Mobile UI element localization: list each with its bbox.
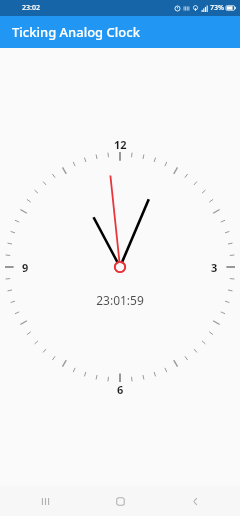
button[interactable]: Back — [165, 486, 225, 516]
staticText: 6 — [117, 382, 124, 397]
staticText: Ticking Analog Clock — [12, 23, 140, 41]
staticText: 23:02 — [22, 3, 40, 13]
staticText: 9 — [22, 260, 29, 275]
button[interactable]: Home — [90, 486, 150, 516]
button[interactable]: Ticking Analog Clock — [0, 16, 240, 48]
staticText: 12 — [114, 137, 127, 152]
staticText: 23:01:59 — [96, 292, 144, 308]
button[interactable]: Recent apps — [15, 486, 75, 516]
staticText: 73% — [210, 3, 224, 13]
staticText: 3 — [211, 260, 218, 275]
